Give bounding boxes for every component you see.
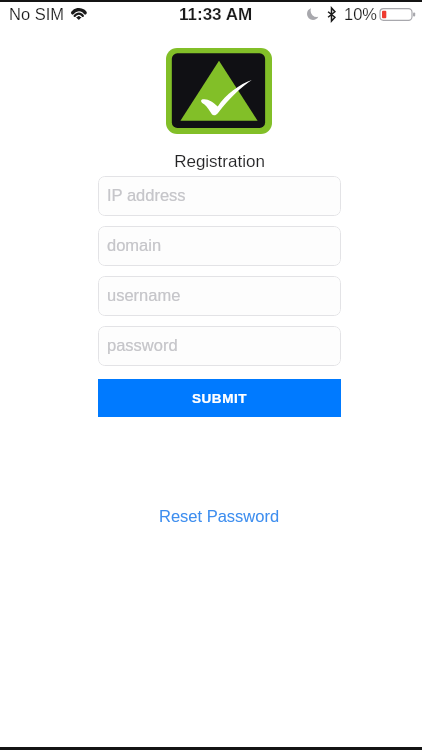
button[interactable]: SUBMIT <box>98 379 341 417</box>
button[interactable]: domain <box>98 226 341 266</box>
button[interactable]: password <box>98 326 341 366</box>
button[interactable]: username <box>98 276 341 316</box>
staticText: domain <box>107 236 162 254</box>
staticText: password <box>107 336 178 354</box>
staticText: SUBMIT <box>192 391 248 406</box>
staticText: IP address <box>107 186 186 204</box>
staticText: Registration <box>174 152 265 171</box>
staticText: No SIM <box>9 5 65 23</box>
staticText: 10% <box>344 5 378 23</box>
button[interactable]: Reset Password <box>98 503 341 529</box>
staticText: Reset Password <box>159 507 280 525</box>
button[interactable]: IP address <box>98 176 341 216</box>
staticText: 11:33 AM <box>179 5 253 24</box>
staticText: username <box>107 286 181 304</box>
